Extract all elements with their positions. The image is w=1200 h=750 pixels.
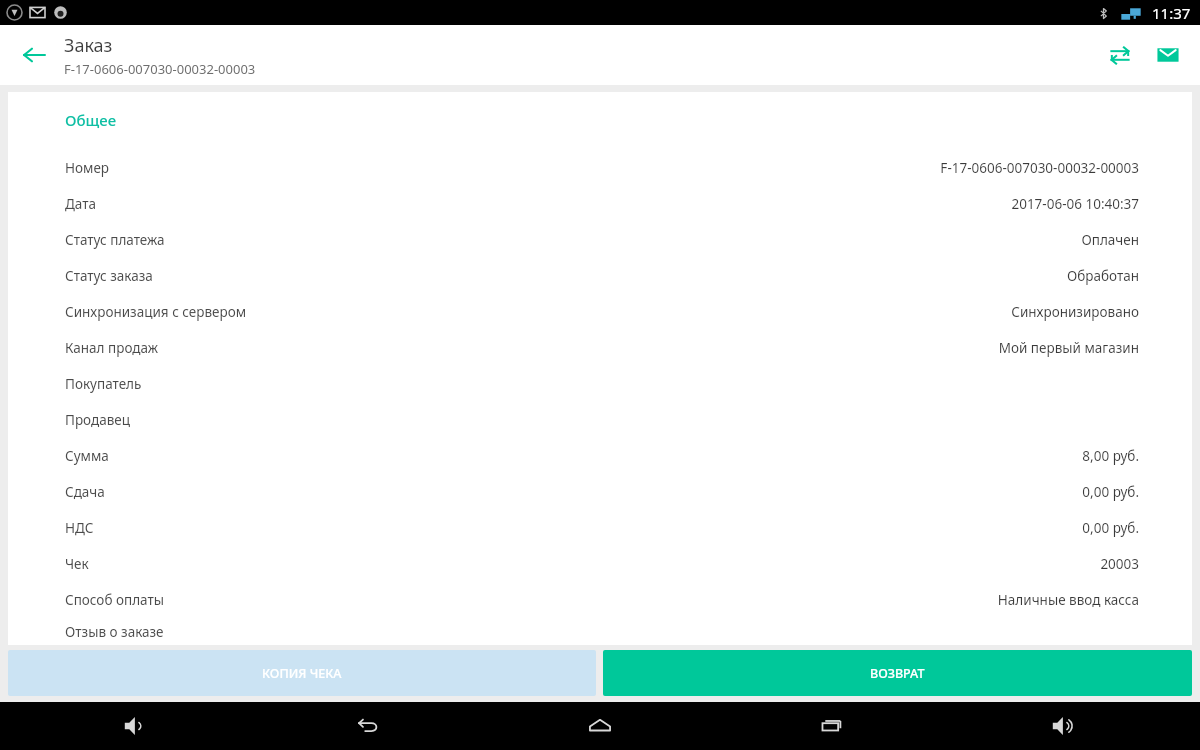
button[interactable]: Продавец bbox=[8, 402, 1192, 438]
staticText: Сумма bbox=[65, 447, 109, 465]
staticText: Оплачен bbox=[1081, 231, 1139, 249]
button[interactable]: Статус заказа bbox=[8, 258, 1192, 294]
button[interactable]: Статус платежа bbox=[8, 222, 1192, 258]
button[interactable]: Домой bbox=[569, 702, 631, 750]
button[interactable]: Синхронизация с сервером bbox=[8, 294, 1192, 330]
staticText: Мой первый магазин bbox=[998, 339, 1139, 357]
staticText: Покупатель bbox=[65, 375, 142, 393]
staticText: 8,00 руб. bbox=[1082, 447, 1139, 465]
staticText: 20003 bbox=[1100, 555, 1139, 573]
button[interactable]: Назад bbox=[10, 31, 58, 79]
staticText: Общее bbox=[65, 110, 117, 130]
button[interactable]: Канал продаж bbox=[8, 330, 1192, 366]
staticText: Синхронизировано bbox=[1011, 303, 1139, 321]
button[interactable]: Отзыв о заказе bbox=[8, 618, 1192, 645]
staticText: Статус заказа bbox=[65, 267, 153, 285]
staticText: 11:37 bbox=[1152, 3, 1191, 23]
button[interactable]: Дата bbox=[8, 186, 1192, 222]
staticText: Заказ bbox=[64, 33, 113, 58]
button[interactable]: ВОЗВРАТ bbox=[603, 650, 1192, 696]
button[interactable]: КОПИЯ ЧЕКА bbox=[8, 650, 596, 696]
button[interactable]: НДС bbox=[8, 510, 1192, 546]
staticText: Номер bbox=[65, 159, 110, 177]
button[interactable]: Сумма bbox=[8, 438, 1192, 474]
staticText: F-17-0606-007030-00032-00003 bbox=[64, 60, 256, 78]
staticText: Дата bbox=[65, 195, 96, 213]
button[interactable]: Номер bbox=[8, 150, 1192, 186]
button[interactable]: Прибавить громкость bbox=[1033, 702, 1095, 750]
button[interactable]: Сдача bbox=[8, 474, 1192, 510]
staticText: Наличные ввод касса bbox=[997, 591, 1139, 609]
staticText: Сдача bbox=[65, 483, 105, 501]
button[interactable]: Чек bbox=[8, 546, 1192, 582]
button[interactable]: Назад bbox=[337, 702, 399, 750]
staticText: Чек bbox=[65, 555, 89, 573]
button[interactable]: Убавить громкость bbox=[105, 702, 167, 750]
staticText: Продавец bbox=[65, 411, 131, 429]
staticText: Канал продаж bbox=[65, 339, 158, 357]
staticText: ВОЗВРАТ bbox=[870, 665, 925, 682]
staticText: Обработан bbox=[1066, 267, 1139, 285]
button[interactable]: Последние приложения bbox=[801, 702, 863, 750]
staticText: 0,00 руб. bbox=[1082, 519, 1139, 537]
staticText: Синхронизация с сервером bbox=[65, 303, 247, 321]
button[interactable]: Покупатель bbox=[8, 366, 1192, 402]
staticText: 2017-06-06 10:40:37 bbox=[1011, 195, 1139, 213]
staticText: 0,00 руб. bbox=[1082, 483, 1139, 501]
button[interactable]: Отправить на почту bbox=[1144, 31, 1192, 79]
staticText: КОПИЯ ЧЕКА bbox=[262, 665, 342, 682]
staticText: Способ оплаты bbox=[65, 591, 164, 609]
staticText: Статус платежа bbox=[65, 231, 165, 249]
staticText: Отзыв о заказе bbox=[65, 623, 164, 641]
staticText: F-17-0606-007030-00032-00003 bbox=[940, 159, 1139, 177]
staticText: НДС bbox=[65, 519, 94, 537]
button[interactable]: Синхронизировать bbox=[1096, 31, 1144, 79]
button[interactable]: Способ оплаты bbox=[8, 582, 1192, 618]
